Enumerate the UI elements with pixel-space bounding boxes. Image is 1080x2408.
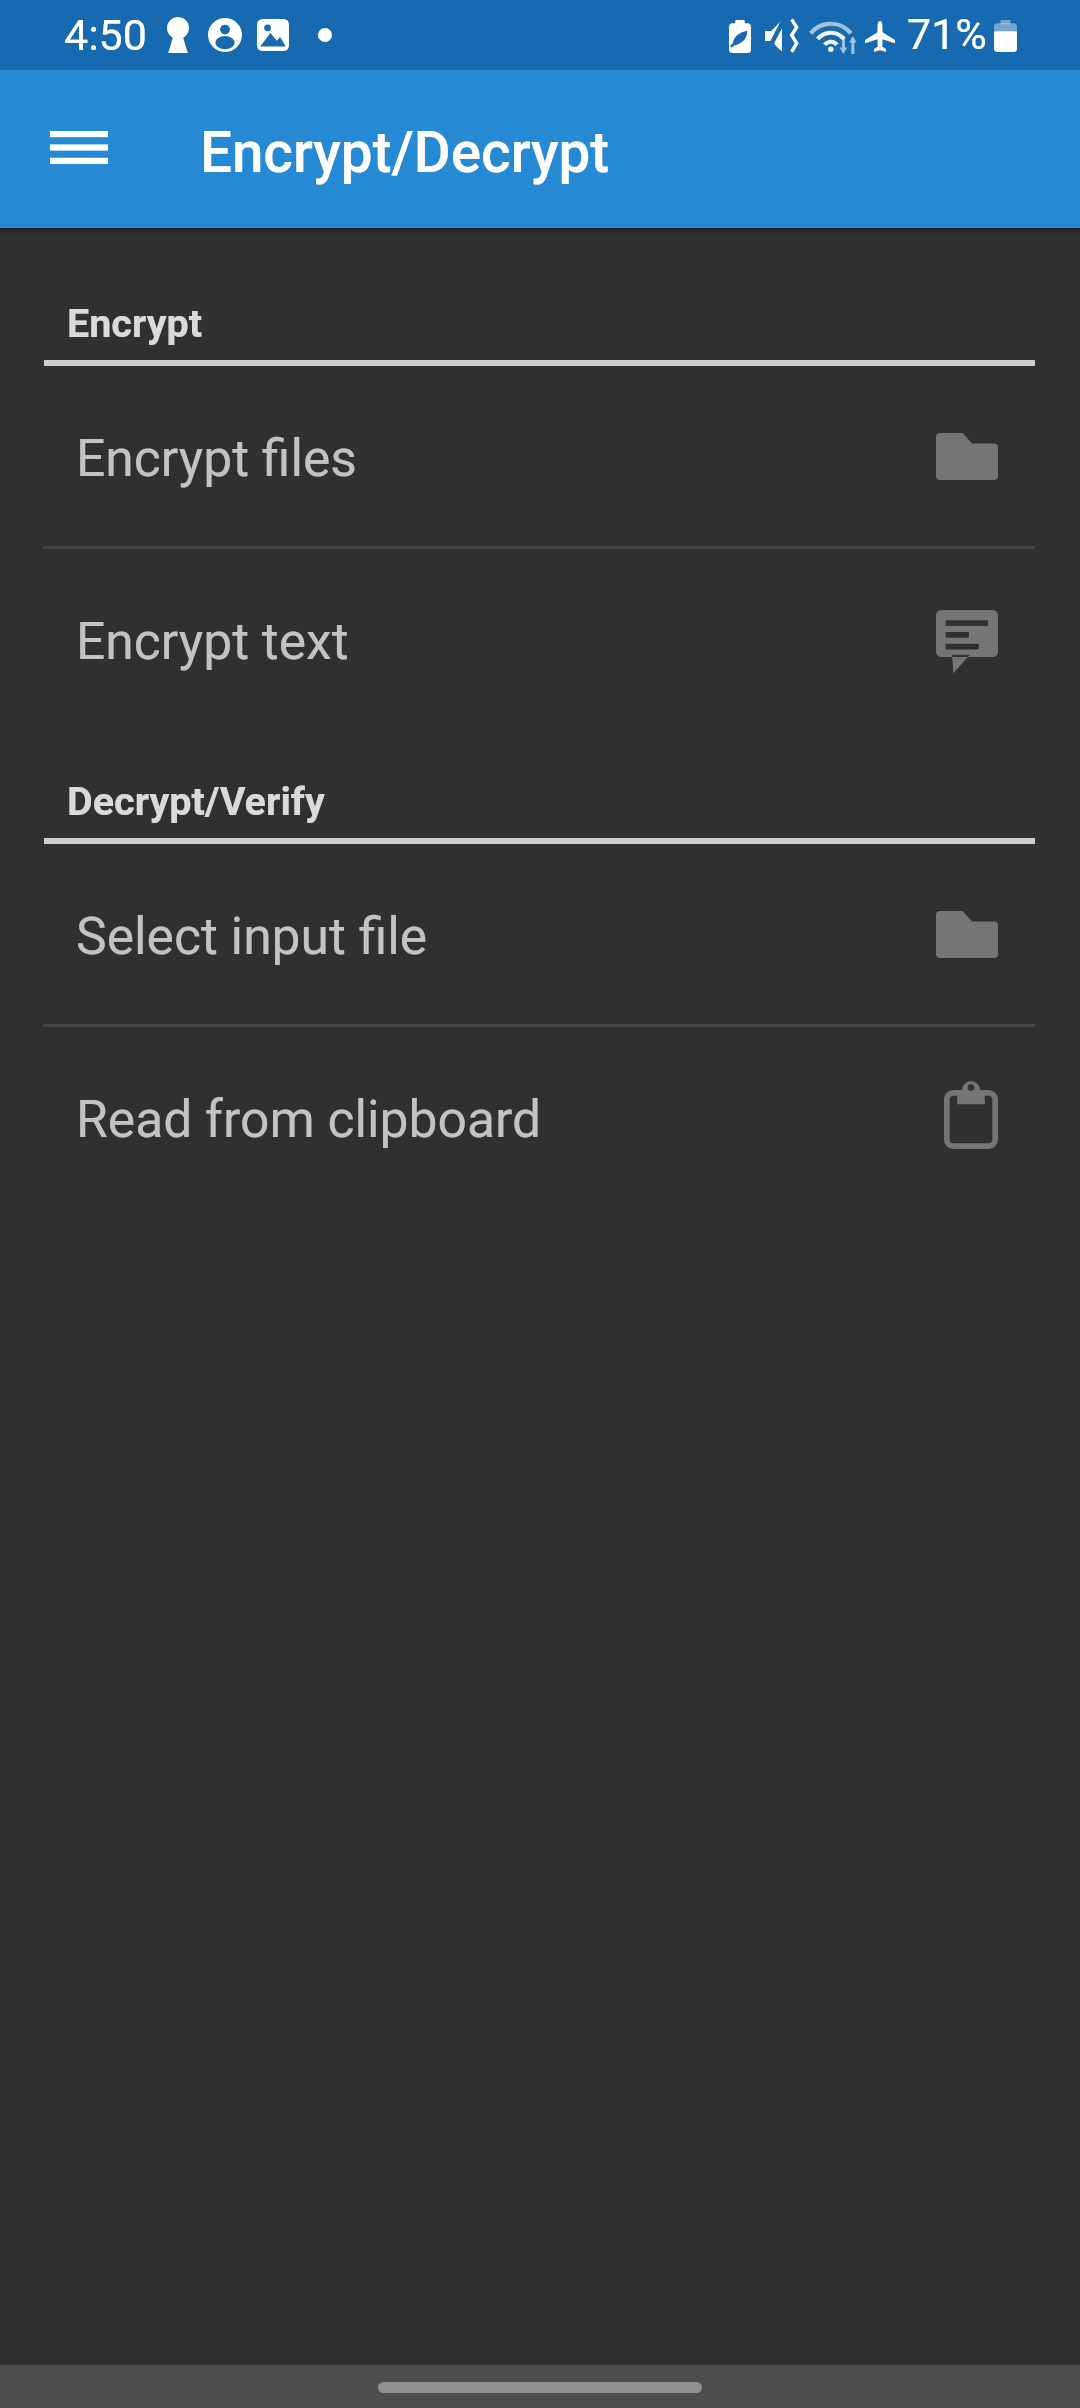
button[interactable]: Read from clipboard [0, 1027, 1080, 1207]
button[interactable]: Encrypt text [0, 549, 1080, 729]
staticText: Encrypt [67, 300, 203, 346]
staticText: Encrypt files [76, 428, 357, 488]
staticText: Encrypt text [76, 611, 349, 671]
staticText: 4:50 [64, 10, 147, 60]
button[interactable]: Encrypt files [0, 366, 1080, 546]
staticText: Read from clipboard [76, 1089, 542, 1149]
staticText: 71% [907, 9, 987, 59]
staticText: Select input file [76, 906, 428, 966]
button[interactable]: Select input file [0, 844, 1080, 1024]
staticText: Decrypt/Verify [67, 778, 325, 824]
button[interactable]: Open navigation drawer [29, 97, 129, 197]
staticText: Encrypt/Decrypt [200, 120, 610, 186]
